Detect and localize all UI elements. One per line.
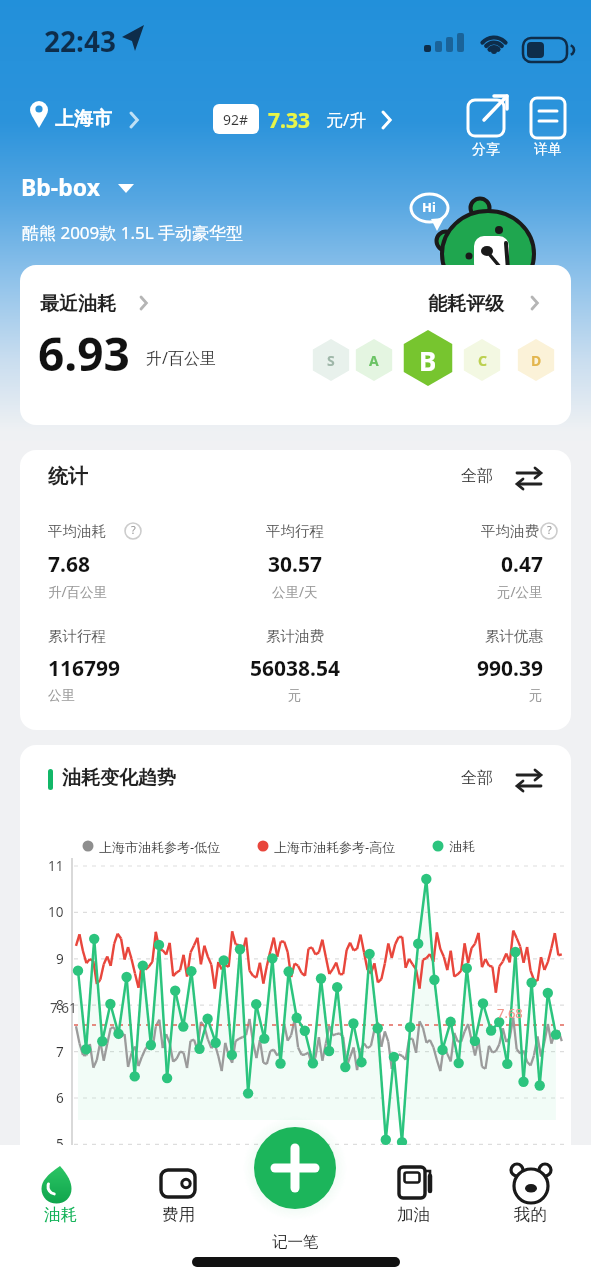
staticText: 加油: [397, 1204, 430, 1225]
staticText: 油耗: [449, 838, 475, 854]
staticText: 油耗变化趋势: [62, 766, 176, 790]
button[interactable]: [524, 92, 574, 166]
staticText: 7.33: [268, 106, 310, 135]
staticText: 6.93: [38, 322, 130, 385]
staticText: 全部: [461, 466, 493, 486]
button[interactable]: [455, 760, 550, 796]
button[interactable]: [254, 1127, 336, 1209]
staticText: 公里/天: [272, 583, 318, 601]
staticText: 能耗评级: [428, 292, 504, 316]
button[interactable]: [143, 1152, 213, 1232]
staticText: 0.47: [501, 550, 543, 579]
staticText: 10: [48, 903, 64, 921]
button[interactable]: [30, 280, 170, 320]
staticText: 92#: [223, 110, 249, 129]
staticText: 元/公里: [497, 583, 543, 601]
staticText: 上海市油耗参考-低位: [99, 838, 221, 856]
staticText: 116799: [48, 654, 121, 683]
staticText: 8: [56, 996, 64, 1014]
staticText: A: [369, 351, 379, 370]
staticText: 全部: [461, 768, 493, 788]
staticText: D: [531, 351, 542, 370]
staticText: 30.57: [268, 550, 322, 579]
staticText: 7: [56, 1043, 64, 1061]
staticText: 油耗: [44, 1204, 77, 1225]
staticText: 11: [48, 857, 64, 875]
staticText: 22:43: [44, 22, 116, 60]
staticText: 元: [288, 687, 302, 704]
staticText: 公里: [48, 687, 75, 704]
staticText: 最近油耗: [40, 292, 116, 316]
staticText: 酷熊 2009款 1.5L 手动豪华型: [22, 221, 244, 244]
staticText: 7.68: [48, 550, 90, 579]
staticText: ?: [131, 522, 136, 537]
staticText: 平均行程: [266, 522, 324, 540]
staticText: S: [327, 351, 335, 370]
staticText: 累计优惠: [485, 627, 543, 645]
staticText: 升/百公里: [146, 347, 216, 369]
button[interactable]: [378, 1152, 448, 1232]
button[interactable]: [455, 458, 550, 494]
staticText: 7.61: [50, 999, 77, 1017]
staticText: 平均油耗: [48, 522, 106, 540]
staticText: 记一笔: [272, 1232, 319, 1252]
staticText: 上海市: [55, 107, 112, 131]
staticText: 7.68: [497, 1004, 523, 1022]
staticText: 升/百公里: [48, 583, 108, 601]
button[interactable]: [25, 1152, 95, 1232]
staticText: 56038.54: [250, 654, 340, 683]
button[interactable]: [462, 92, 512, 166]
staticText: 分享: [472, 141, 500, 159]
staticText: 5: [56, 1135, 64, 1153]
button[interactable]: 92#: [213, 104, 259, 134]
staticText: 6: [56, 1089, 64, 1107]
staticText: 详单: [534, 141, 562, 159]
staticText: B: [419, 343, 437, 378]
staticText: 元: [529, 687, 543, 704]
staticText: 上海市油耗参考-高位: [274, 838, 396, 856]
staticText: 990.39: [477, 654, 543, 683]
staticText: Hi: [422, 198, 436, 216]
button[interactable]: [495, 1152, 565, 1232]
staticText: Bb-box: [21, 171, 100, 202]
staticText: 累计行程: [48, 627, 106, 645]
staticText: ?: [547, 522, 552, 537]
button[interactable]: [420, 280, 550, 320]
staticText: 费用: [162, 1204, 195, 1225]
staticText: 平均油费: [481, 522, 539, 540]
staticText: 累计油费: [266, 627, 324, 645]
staticText: 统计: [48, 464, 88, 489]
staticText: 9: [56, 950, 64, 968]
staticText: C: [478, 351, 487, 370]
staticText: 我的: [514, 1204, 547, 1225]
staticText: 元/升: [326, 108, 367, 131]
